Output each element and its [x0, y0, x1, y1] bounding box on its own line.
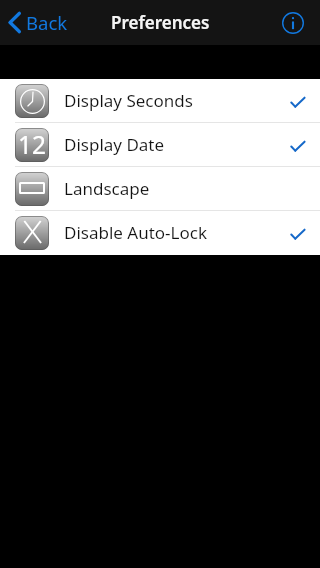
button[interactable]: Back — [0, 0, 76, 45]
staticText: Display Seconds — [64, 89, 193, 112]
button[interactable]: Display Seconds — [0, 79, 320, 123]
button[interactable]: Info — [274, 0, 312, 45]
staticText: Preferences — [111, 11, 210, 34]
staticText: 12 — [18, 128, 47, 161]
staticText: Display Date — [64, 133, 165, 156]
button[interactable]: Disable Auto-Lock — [0, 211, 320, 255]
staticText: Landscape — [64, 177, 150, 200]
button[interactable]: 12 — [0, 123, 320, 167]
button[interactable]: Landscape — [0, 167, 320, 211]
staticText: Back — [26, 10, 68, 35]
staticText: Disable Auto-Lock — [64, 221, 208, 244]
